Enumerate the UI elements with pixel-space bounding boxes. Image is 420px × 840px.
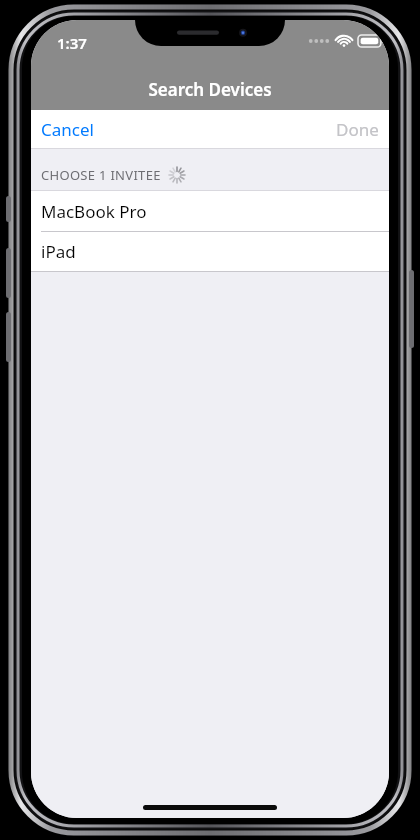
staticText: iPad bbox=[41, 240, 76, 263]
staticText: MacBook Pro bbox=[41, 200, 147, 223]
staticText: Search Devices bbox=[31, 78, 389, 101]
button[interactable]: Cancel bbox=[31, 110, 104, 148]
staticText: CHOOSE 1 INVITEE bbox=[41, 166, 161, 184]
staticText: 1:37 bbox=[57, 33, 87, 53]
other: Wi-Fi bbox=[336, 35, 352, 47]
other: Cellular signal bbox=[308, 37, 330, 45]
staticText: Cancel bbox=[41, 118, 94, 141]
button[interactable]: iPad bbox=[31, 231, 389, 271]
button[interactable]: MacBook Pro bbox=[31, 191, 389, 231]
staticText: Done bbox=[336, 118, 379, 141]
button[interactable]: Done bbox=[326, 110, 389, 148]
other: Battery bbox=[358, 35, 384, 47]
